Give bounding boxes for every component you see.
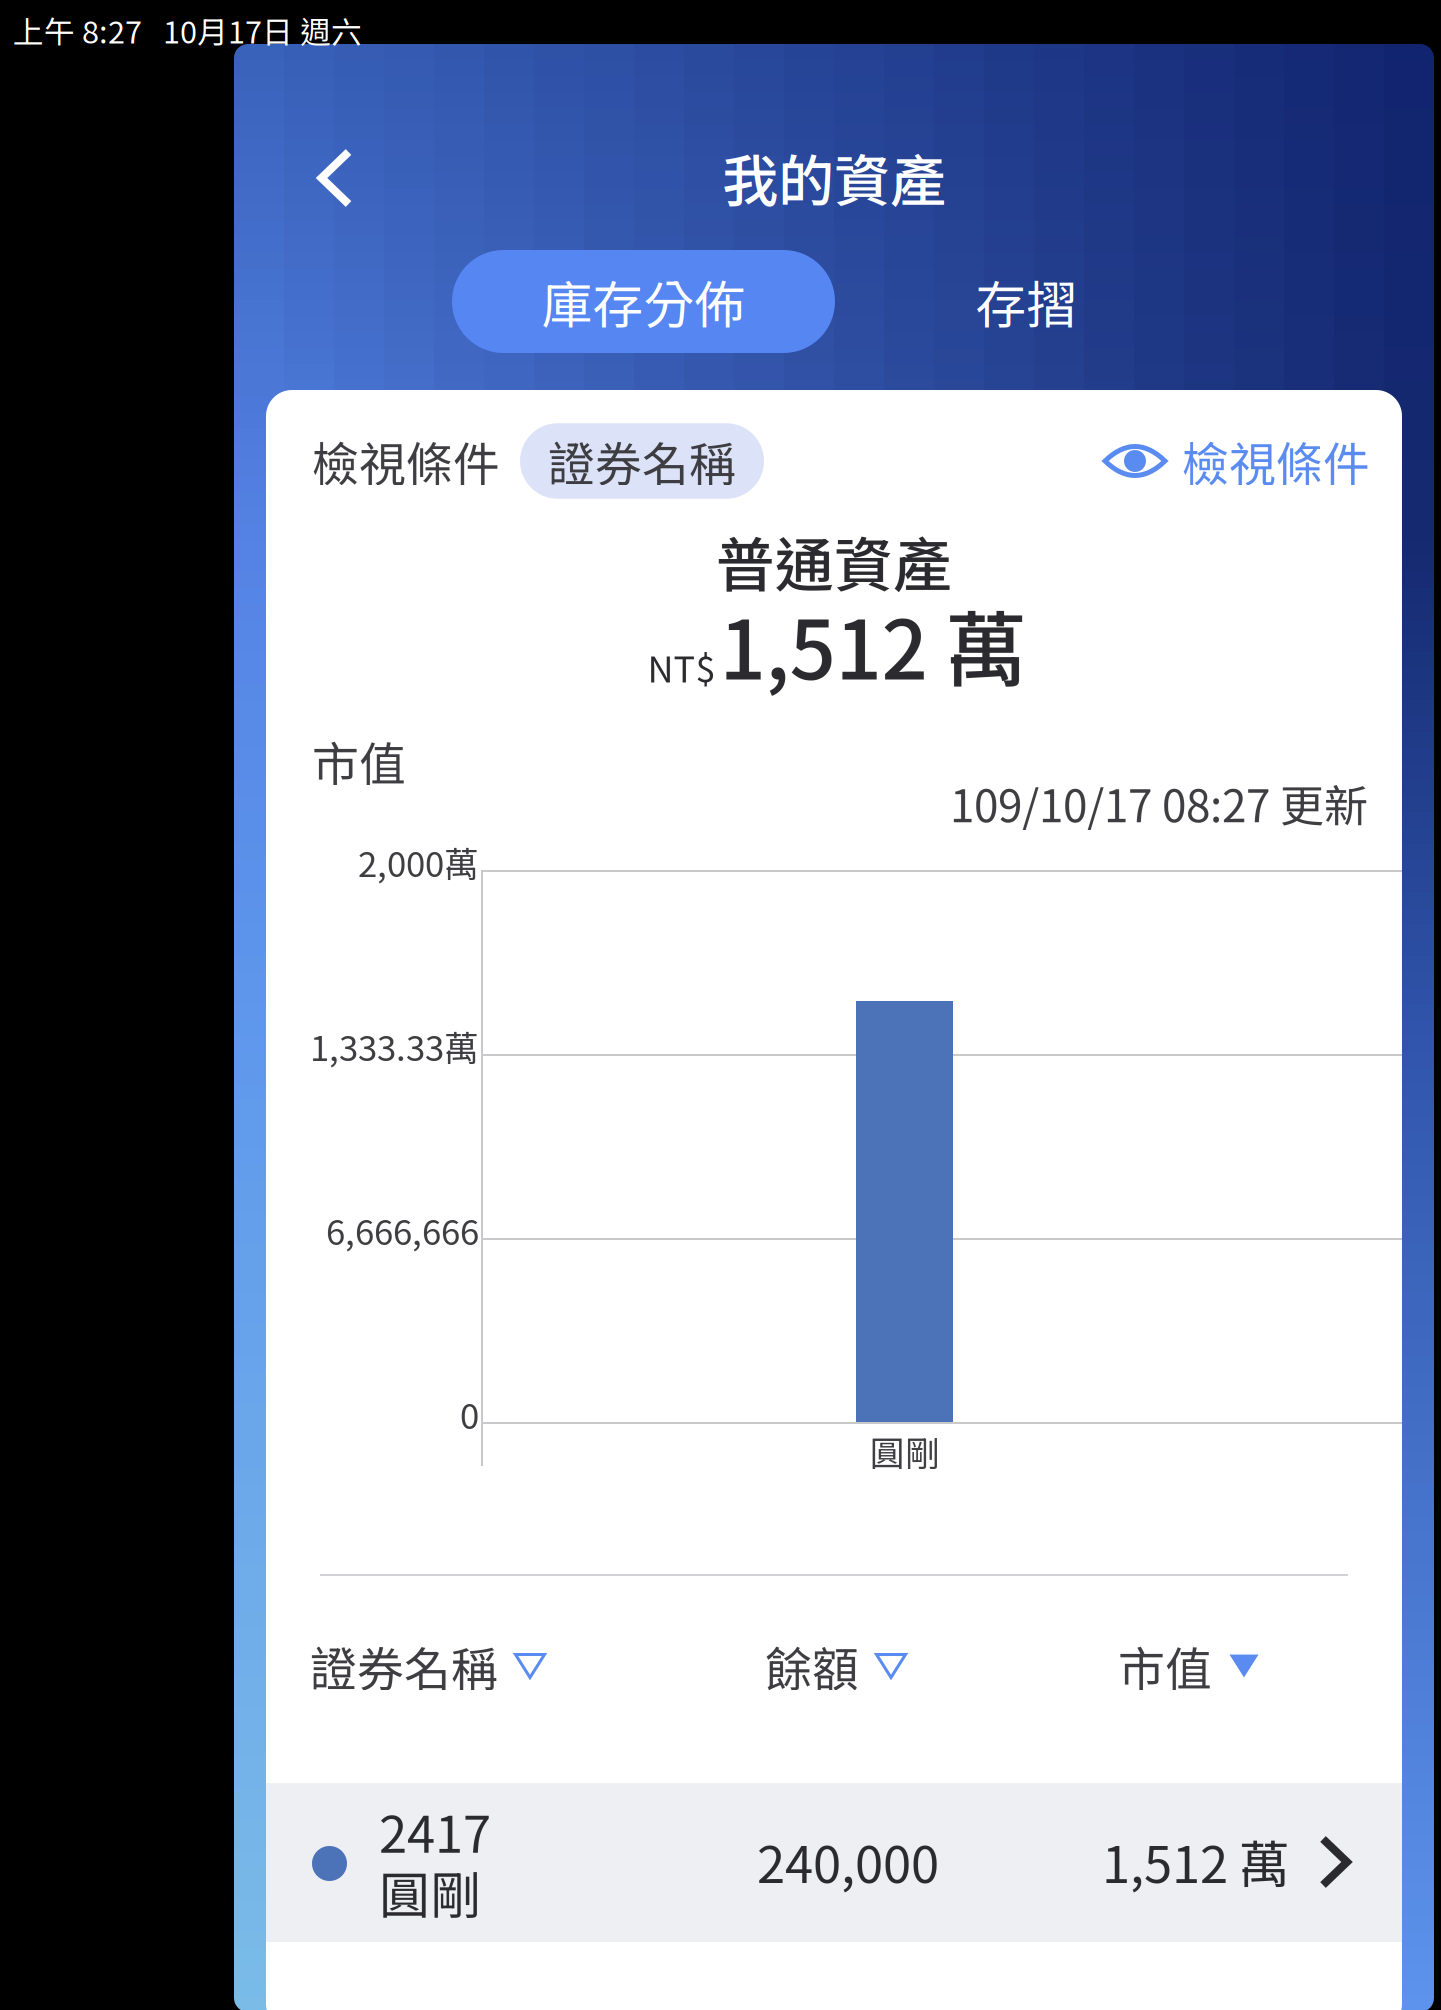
- staticText: 我的資產: [722, 136, 946, 218]
- staticText: 1,512 萬: [1102, 1824, 1290, 1898]
- staticText: 1,333.33萬: [310, 1021, 479, 1071]
- staticText: 圓剛: [870, 1426, 940, 1476]
- staticText: 證券名稱: [548, 427, 736, 495]
- staticText: 1,512 萬: [719, 585, 1026, 703]
- staticText: 6,666,666: [326, 1205, 479, 1255]
- button[interactable]: 證券名稱: [310, 1630, 610, 1702]
- staticText: 2,000萬: [358, 837, 479, 887]
- staticText: 存摺: [975, 265, 1077, 338]
- staticText: 普通資產: [716, 518, 952, 603]
- staticText: 餘額: [765, 1632, 859, 1700]
- button[interactable]: 2417: [266, 1783, 1402, 1942]
- staticText: 市值: [1118, 1632, 1212, 1700]
- staticText: 240,000: [757, 1824, 939, 1898]
- staticText: 圓剛: [379, 1855, 481, 1928]
- staticText: 109/10/17 08:27 更新: [950, 771, 1368, 835]
- staticText: 證券名稱: [310, 1632, 498, 1700]
- staticText: 市值: [312, 727, 406, 795]
- staticText: 2417: [379, 1794, 491, 1867]
- button[interactable]: 檢視條件: [266, 428, 1370, 494]
- staticText: 檢視條件: [312, 427, 500, 495]
- button[interactable]: Back: [290, 133, 380, 223]
- button[interactable]: 庫存分佈: [452, 250, 835, 353]
- button[interactable]: 餘額: [266, 1630, 1406, 1702]
- staticText: NT$: [647, 641, 715, 693]
- staticText: 0: [460, 1389, 479, 1439]
- staticText: 上午 8:27 10月17日 週六: [13, 8, 362, 52]
- button[interactable]: 市值: [266, 1630, 1260, 1702]
- staticText: 庫存分佈: [541, 265, 745, 338]
- button[interactable]: 證券名稱: [520, 423, 764, 499]
- button[interactable]: 存摺: [835, 250, 1218, 353]
- staticText: 檢視條件: [1182, 427, 1370, 495]
